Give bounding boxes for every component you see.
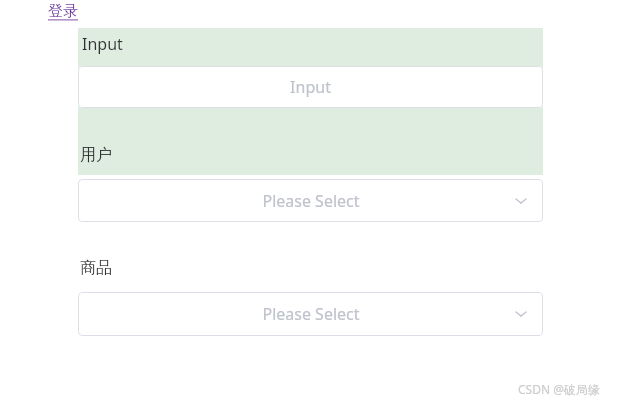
staticText: Please Select <box>262 190 360 212</box>
other: Expand dropdown <box>514 194 528 208</box>
staticText: 商品 <box>80 258 112 278</box>
button[interactable]: 登录 <box>47 1 79 22</box>
other: Expand dropdown <box>514 307 528 321</box>
staticText: Input <box>290 76 331 98</box>
button[interactable]: 商品 Please Select <box>78 292 543 336</box>
button[interactable]: Input <box>78 66 543 108</box>
staticText: 登录 <box>48 2 78 21</box>
staticText: Input <box>82 33 123 55</box>
staticText: 用户 <box>80 145 112 165</box>
button[interactable]: 用户 Please Select <box>78 179 543 222</box>
staticText: Please Select <box>262 303 360 325</box>
staticText: CSDN @破局缘 <box>518 381 600 397</box>
